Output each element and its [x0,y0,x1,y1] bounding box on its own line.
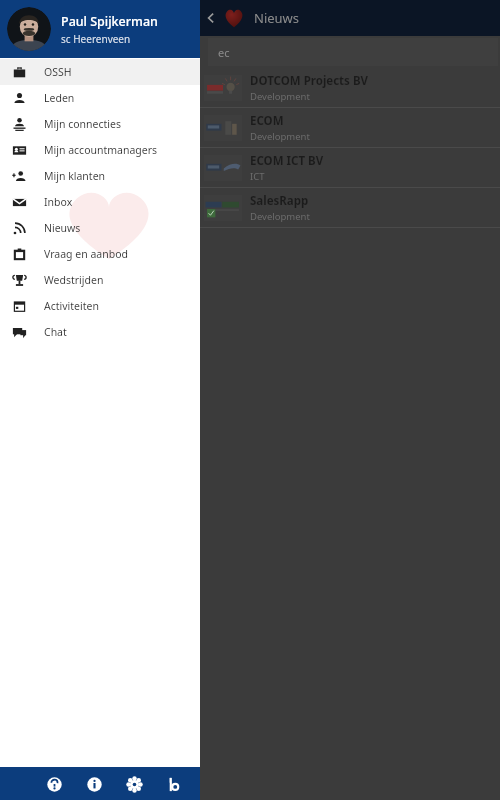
staticText: Mijn connecties [44,117,121,131]
staticText: Chat [44,325,67,339]
button[interactable]: Mijn accountmanagers [0,137,200,163]
button[interactable]: ECOM [0,108,500,147]
staticText: Development [250,210,310,223]
staticText: Vraag en aanbod [44,247,128,261]
staticText: ec [218,45,230,60]
button[interactable]: Mijn klanten [0,163,200,189]
staticText: OSSH [44,65,72,79]
button[interactable]: Info [82,772,106,796]
button[interactable]: Chat [0,319,200,345]
staticText: Paul Spijkerman [61,13,158,30]
button[interactable]: DOTCOM Projects BV [0,68,500,107]
button[interactable]: Vraag en aanbod [0,241,200,267]
button[interactable]: SalesRapp [0,188,500,227]
staticText: Development [250,130,310,143]
staticText: DOTCOM Projects BV [250,73,369,89]
staticText: Activiteiten [44,299,99,313]
button[interactable]: ECOM ICT BV [0,148,500,187]
button[interactable]: Paul Spijkerman [0,0,200,58]
button[interactable]: Settings [122,772,146,796]
button[interactable]: Help [42,772,66,796]
staticText: Inbox [44,195,73,209]
button[interactable]: Wedstrijden [0,267,200,293]
button[interactable]: OSSH [0,59,200,85]
staticText: Nieuws [44,221,81,235]
staticText: Development [250,90,310,103]
staticText: SalesRapp [250,193,309,209]
staticText: Mijn accountmanagers [44,143,158,157]
staticText: ECOM ICT BV [250,153,324,169]
button[interactable]: Mijn connecties [0,111,200,137]
button[interactable]: Nieuws [0,215,200,241]
staticText: Nieuws [254,9,300,27]
staticText: Mijn klanten [44,169,106,183]
button[interactable]: Back [200,7,222,29]
button[interactable]: Activiteiten [0,293,200,319]
staticText: Leden [44,91,75,105]
staticText: ECOM [250,113,284,129]
staticText: ICT [250,170,265,183]
button[interactable]: Leden [0,85,200,111]
button[interactable]: ec [208,38,498,66]
staticText: Wedstrijden [44,273,104,287]
button[interactable]: Inbox [0,189,200,215]
button[interactable]: Branding [162,772,186,796]
staticText: sc Heerenveen [61,32,131,46]
